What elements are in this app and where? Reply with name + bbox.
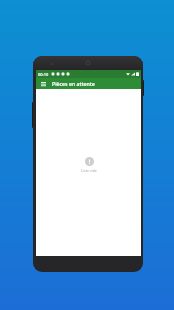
button[interactable]: Open navigation drawer [39,79,48,88]
staticText: Liste vide [81,168,97,173]
staticText: 00:10 [38,72,49,77]
staticText: Pièces en attente [52,80,95,87]
